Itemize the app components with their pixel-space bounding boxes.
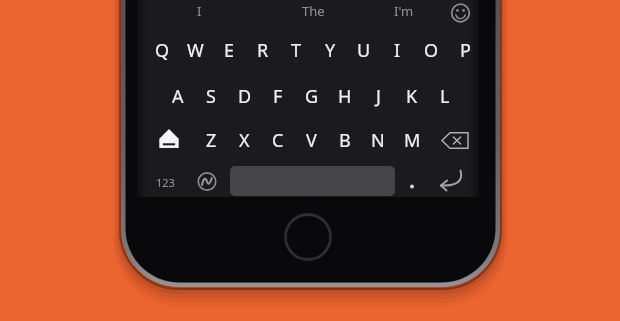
button[interactable]: L bbox=[428, 74, 462, 118]
staticText: T bbox=[291, 38, 302, 63]
button[interactable]: E bbox=[212, 28, 246, 72]
button[interactable]: K bbox=[395, 74, 429, 118]
staticText: J bbox=[376, 84, 381, 109]
button[interactable] bbox=[438, 118, 479, 162]
button[interactable]: I bbox=[380, 28, 414, 72]
staticText: The bbox=[302, 2, 325, 20]
button[interactable]: U bbox=[347, 28, 381, 72]
staticText: I bbox=[197, 2, 202, 20]
button[interactable] bbox=[434, 160, 479, 203]
button[interactable]: A bbox=[161, 74, 195, 118]
button[interactable]: J bbox=[361, 74, 395, 118]
staticText: U bbox=[357, 38, 371, 63]
staticText: H bbox=[338, 84, 352, 109]
button[interactable]: H bbox=[328, 74, 362, 118]
staticText: M bbox=[404, 128, 421, 153]
staticText: B bbox=[339, 128, 351, 153]
staticText: Y bbox=[325, 38, 336, 63]
button[interactable]: G bbox=[295, 74, 329, 118]
button[interactable]: P bbox=[448, 28, 482, 72]
staticText: D bbox=[238, 84, 252, 109]
button[interactable] bbox=[152, 118, 186, 162]
staticText: X bbox=[239, 128, 250, 153]
button[interactable]: X bbox=[227, 118, 261, 162]
staticText: V bbox=[306, 128, 317, 153]
staticText: 123 bbox=[156, 175, 175, 190]
staticText: W bbox=[187, 38, 204, 63]
staticText: Q bbox=[155, 38, 170, 63]
button[interactable]: I'm bbox=[387, 0, 421, 33]
button[interactable]: V bbox=[294, 118, 328, 162]
staticText: P bbox=[460, 38, 471, 63]
button[interactable]: D bbox=[228, 74, 262, 118]
button[interactable]: O bbox=[414, 28, 448, 72]
button[interactable]: Z bbox=[194, 118, 228, 162]
button[interactable]: 123 bbox=[148, 160, 182, 204]
button[interactable]: B bbox=[328, 118, 362, 162]
button[interactable] bbox=[443, 0, 477, 27]
button[interactable]: I bbox=[182, 0, 216, 33]
button[interactable]: W bbox=[178, 28, 212, 72]
button[interactable]: Y bbox=[313, 28, 347, 72]
button[interactable]: R bbox=[246, 28, 280, 72]
staticText: I'm bbox=[394, 2, 414, 20]
staticText: S bbox=[206, 84, 216, 109]
button[interactable]: The bbox=[296, 0, 330, 33]
staticText: R bbox=[257, 38, 269, 63]
button[interactable]: S bbox=[194, 74, 228, 118]
button[interactable]: T bbox=[279, 28, 313, 72]
staticText: N bbox=[371, 128, 385, 153]
button[interactable]: F bbox=[261, 74, 295, 118]
button[interactable] bbox=[190, 160, 224, 203]
staticText: L bbox=[440, 84, 450, 109]
staticText: F bbox=[273, 84, 283, 109]
button[interactable]: Q bbox=[145, 28, 179, 72]
button[interactable] bbox=[398, 160, 426, 203]
staticText: A bbox=[172, 84, 184, 109]
staticText: I bbox=[394, 38, 401, 63]
staticText: K bbox=[406, 84, 418, 109]
staticText: G bbox=[305, 84, 319, 109]
button[interactable]: C bbox=[261, 118, 295, 162]
button[interactable]: M bbox=[395, 118, 429, 162]
staticText: O bbox=[424, 38, 439, 63]
staticText: Z bbox=[206, 128, 217, 153]
button[interactable]: N bbox=[361, 118, 395, 162]
staticText: C bbox=[272, 128, 284, 153]
staticText: E bbox=[224, 38, 235, 63]
